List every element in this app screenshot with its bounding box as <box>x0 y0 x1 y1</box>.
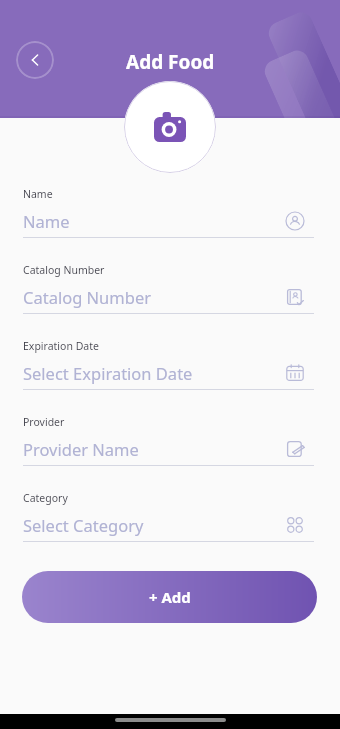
staticText: Provider <box>23 415 65 429</box>
staticText: Expiration Date <box>23 339 99 353</box>
button[interactable]: Add photo <box>124 81 216 173</box>
staticText: Select Expiration Date <box>23 362 294 384</box>
staticText: Select Category <box>23 514 294 536</box>
staticText: Catalog Number <box>23 263 105 277</box>
button[interactable]: Name <box>23 210 314 232</box>
button[interactable]: Back <box>16 41 54 79</box>
button[interactable]: Catalog Number <box>23 286 314 308</box>
staticText: Catalog Number <box>23 286 294 308</box>
staticText: + Add <box>149 587 191 607</box>
staticText: Name <box>23 210 294 232</box>
staticText: Provider Name <box>23 438 294 460</box>
button[interactable]: Provider Name <box>23 438 314 460</box>
staticText: Category <box>23 491 68 505</box>
button[interactable]: Select Expiration Date <box>23 362 314 384</box>
staticText: Add Food <box>126 49 215 75</box>
button[interactable]: Select Category <box>23 514 314 536</box>
staticText: Name <box>23 187 53 201</box>
button[interactable]: + Add <box>22 571 317 623</box>
